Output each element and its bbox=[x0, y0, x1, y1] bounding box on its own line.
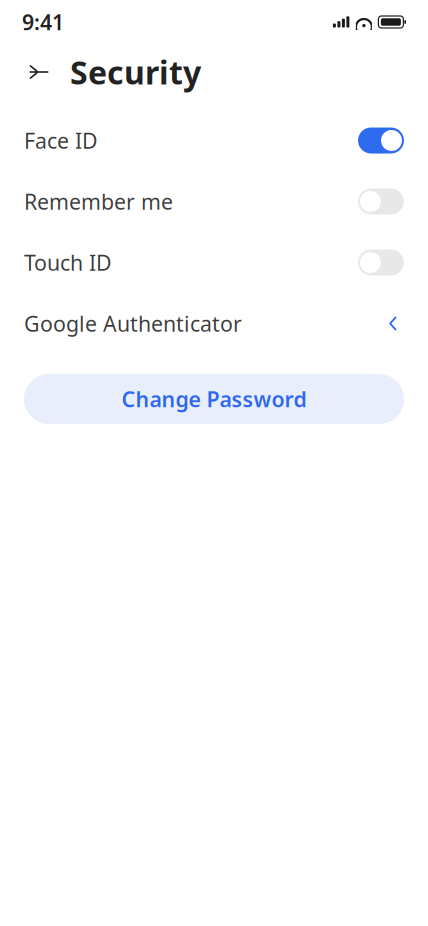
staticText: Face ID bbox=[24, 126, 98, 155]
button[interactable]: Touch ID bbox=[0, 232, 428, 293]
button[interactable]: Google Authenticator bbox=[0, 293, 428, 354]
button[interactable]: Face ID bbox=[0, 110, 428, 171]
button[interactable]: Change Password bbox=[24, 374, 404, 424]
staticText: Remember me bbox=[24, 187, 173, 216]
button[interactable]: Back bbox=[24, 57, 54, 87]
staticText: 9:41 bbox=[22, 8, 64, 36]
staticText: Touch ID bbox=[24, 248, 112, 277]
staticText: Google Authenticator bbox=[24, 309, 242, 338]
staticText: Security bbox=[70, 51, 201, 93]
staticText: Change Password bbox=[121, 385, 306, 413]
button[interactable]: Remember me bbox=[0, 171, 428, 232]
